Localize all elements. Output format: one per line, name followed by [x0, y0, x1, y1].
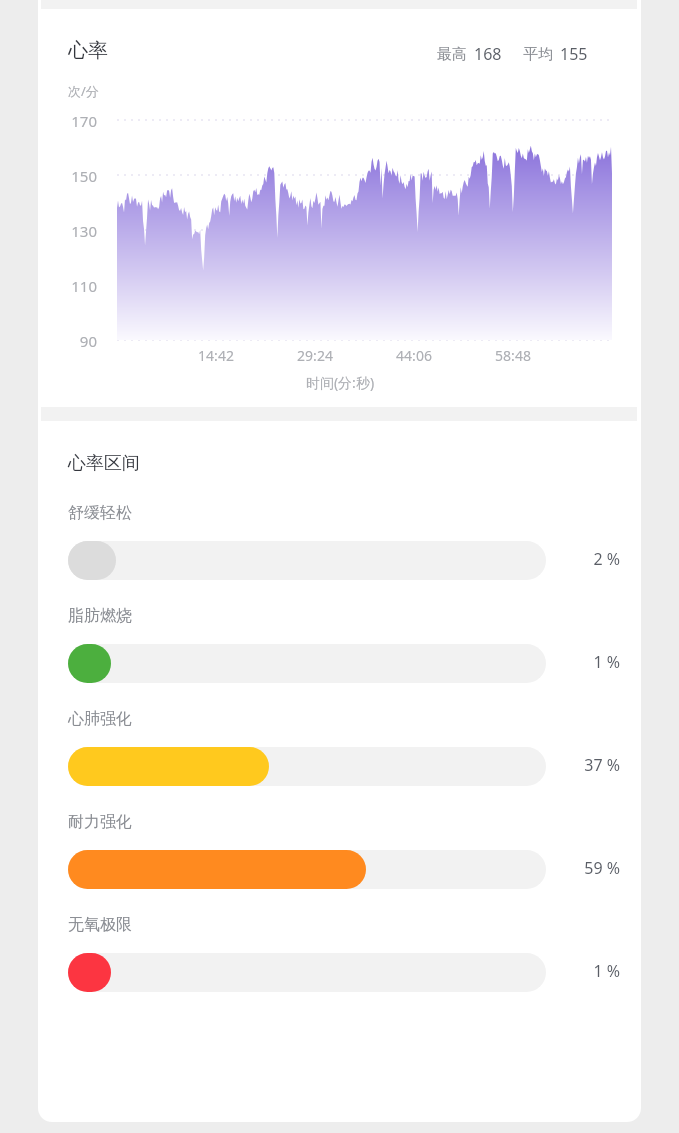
- staticText: 168: [474, 43, 502, 65]
- staticText: 1 %: [558, 651, 620, 673]
- button[interactable]: 舒缓轻松: [60, 501, 620, 589]
- staticText: 2 %: [558, 548, 620, 570]
- staticText: 44:06: [374, 346, 454, 365]
- staticText: 耐力强化: [68, 812, 132, 832]
- staticText: 舒缓轻松: [68, 503, 132, 523]
- staticText: 最高: [437, 45, 467, 64]
- staticText: 37 %: [558, 754, 620, 776]
- staticText: 155: [560, 43, 588, 65]
- staticText: 58:48: [473, 346, 553, 365]
- button[interactable]: 耐力强化: [60, 810, 620, 898]
- staticText: 170: [37, 111, 97, 131]
- staticText: 14:42: [176, 346, 256, 365]
- staticText: 平均: [523, 45, 553, 64]
- button[interactable]: 脂肪燃烧: [60, 604, 620, 692]
- staticText: 心率区间: [68, 452, 140, 475]
- staticText: 脂肪燃烧: [68, 606, 132, 626]
- staticText: 心肺强化: [68, 709, 132, 729]
- button[interactable]: 心肺强化: [60, 707, 620, 795]
- staticText: 110: [37, 276, 97, 296]
- staticText: 59 %: [558, 857, 620, 879]
- button[interactable]: 无氧极限: [60, 913, 620, 1001]
- staticText: 1 %: [558, 960, 620, 982]
- staticText: 130: [37, 221, 97, 241]
- staticText: 29:24: [275, 346, 355, 365]
- staticText: 次/分: [68, 82, 99, 100]
- staticText: 150: [37, 166, 97, 186]
- staticText: 心率: [68, 38, 108, 63]
- staticText: 时间(分:秒): [260, 373, 420, 392]
- staticText: 无氧极限: [68, 915, 132, 935]
- staticText: 90: [37, 331, 97, 351]
